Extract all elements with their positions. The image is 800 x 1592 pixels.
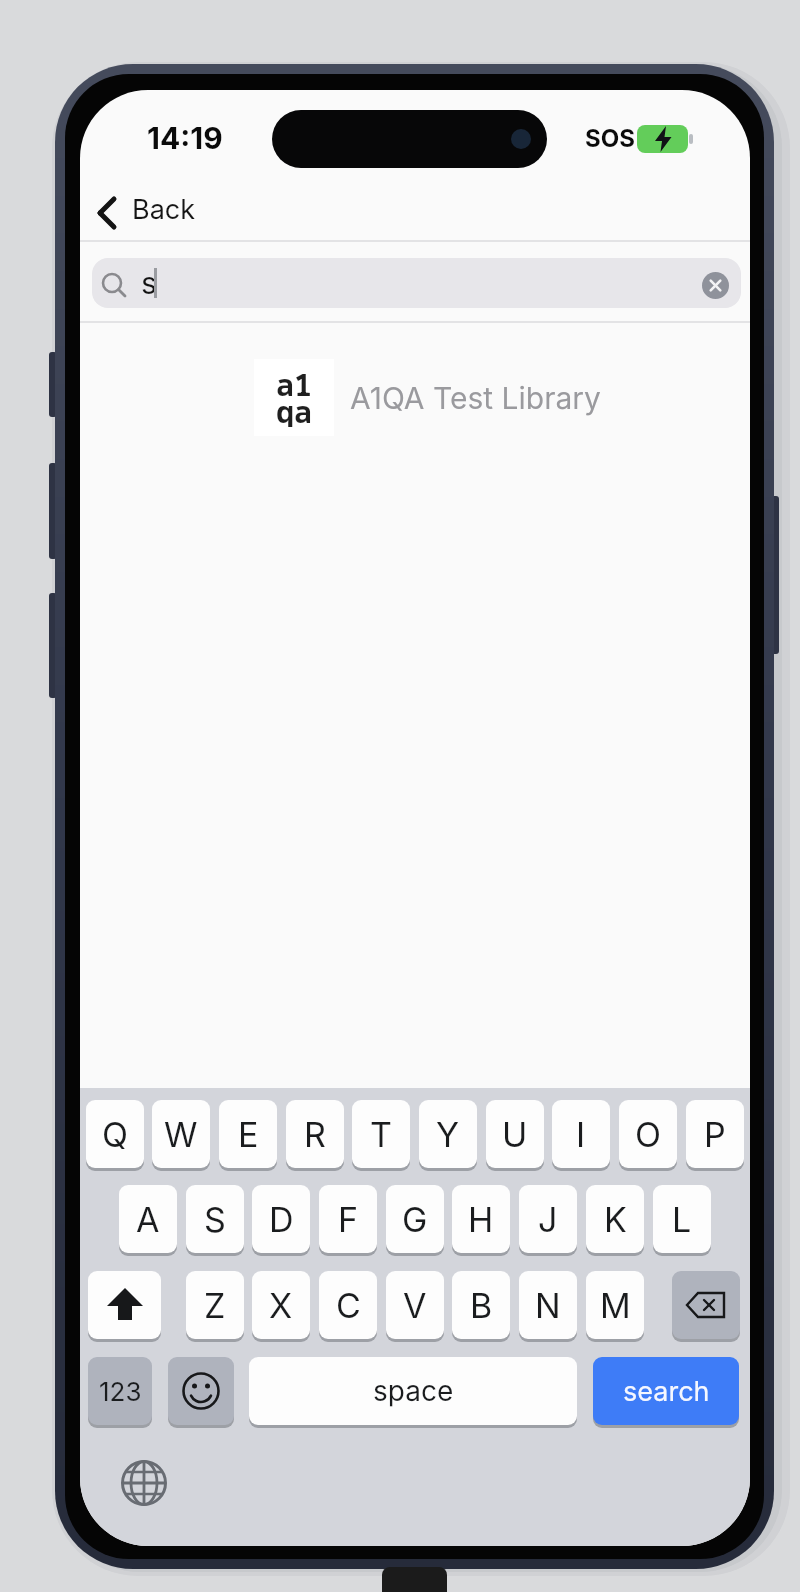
staticText: space <box>373 1374 454 1408</box>
button[interactable]: Q <box>86 1100 144 1168</box>
staticText: 14:19 <box>147 120 223 156</box>
button[interactable]: U <box>486 1100 544 1168</box>
staticText: B <box>470 1285 493 1326</box>
staticText: V <box>403 1285 427 1326</box>
button[interactable]: J <box>519 1185 577 1253</box>
staticText: D <box>269 1199 294 1240</box>
button[interactable]: H <box>452 1185 510 1253</box>
staticText: C <box>336 1285 361 1326</box>
button[interactable]: D <box>252 1185 310 1253</box>
staticText: H <box>468 1199 494 1240</box>
staticText: I <box>576 1114 586 1155</box>
staticText: T <box>370 1114 392 1155</box>
staticText: O <box>635 1114 661 1155</box>
button[interactable]: R <box>286 1100 344 1168</box>
button[interactable]: Back <box>90 188 250 230</box>
staticText: qa <box>276 391 312 427</box>
button[interactable]: K <box>586 1185 644 1253</box>
button[interactable] <box>702 272 729 299</box>
button[interactable]: A <box>119 1185 177 1253</box>
staticText: SOS <box>585 124 635 153</box>
staticText: Y <box>436 1114 460 1155</box>
button[interactable]: a1 <box>250 355 580 440</box>
button[interactable]: F <box>319 1185 377 1253</box>
staticText: search <box>623 1375 710 1408</box>
staticText: K <box>604 1199 627 1240</box>
button[interactable]: S <box>186 1185 244 1253</box>
staticText: G <box>402 1199 428 1240</box>
button[interactable]: I <box>552 1100 610 1168</box>
button[interactable]: Z <box>186 1271 244 1339</box>
button[interactable]: B <box>452 1271 510 1339</box>
button[interactable]: X <box>252 1271 310 1339</box>
staticText: J <box>538 1199 558 1240</box>
button[interactable] <box>672 1271 740 1339</box>
staticText: E <box>238 1114 259 1155</box>
button[interactable]: s <box>92 258 741 308</box>
button[interactable]: V <box>386 1271 444 1339</box>
staticText: M <box>600 1285 631 1326</box>
staticText: A <box>136 1199 160 1240</box>
button[interactable]: N <box>519 1271 577 1339</box>
button[interactable] <box>88 1271 161 1339</box>
button[interactable] <box>118 1457 170 1509</box>
staticText: F <box>338 1199 359 1240</box>
staticText: 123 <box>99 1376 142 1407</box>
staticText: L <box>672 1199 692 1240</box>
button[interactable]: L <box>653 1185 711 1253</box>
staticText: X <box>269 1285 293 1326</box>
staticText: Back <box>132 193 196 226</box>
staticText: S <box>204 1199 226 1240</box>
button[interactable]: space <box>249 1357 577 1425</box>
button[interactable]: C <box>319 1271 377 1339</box>
button[interactable]: T <box>352 1100 410 1168</box>
staticText: Z <box>204 1285 226 1326</box>
button[interactable]: W <box>152 1100 210 1168</box>
button[interactable] <box>168 1357 234 1425</box>
staticText: R <box>304 1114 326 1155</box>
staticText: P <box>704 1114 726 1155</box>
button[interactable]: search <box>593 1357 739 1425</box>
staticText: Q <box>102 1114 128 1155</box>
button[interactable]: G <box>386 1185 444 1253</box>
button[interactable]: P <box>686 1100 744 1168</box>
staticText: U <box>502 1114 528 1155</box>
button[interactable]: O <box>619 1100 677 1168</box>
staticText: a1 <box>276 364 312 400</box>
staticText: W <box>164 1114 198 1155</box>
staticText: N <box>535 1285 561 1326</box>
staticText: A1QA Test Library <box>350 380 601 416</box>
button[interactable]: E <box>219 1100 277 1168</box>
button[interactable]: M <box>586 1271 644 1339</box>
button[interactable]: Y <box>419 1100 477 1168</box>
staticText: s <box>141 265 157 301</box>
button[interactable]: 123 <box>88 1357 152 1425</box>
